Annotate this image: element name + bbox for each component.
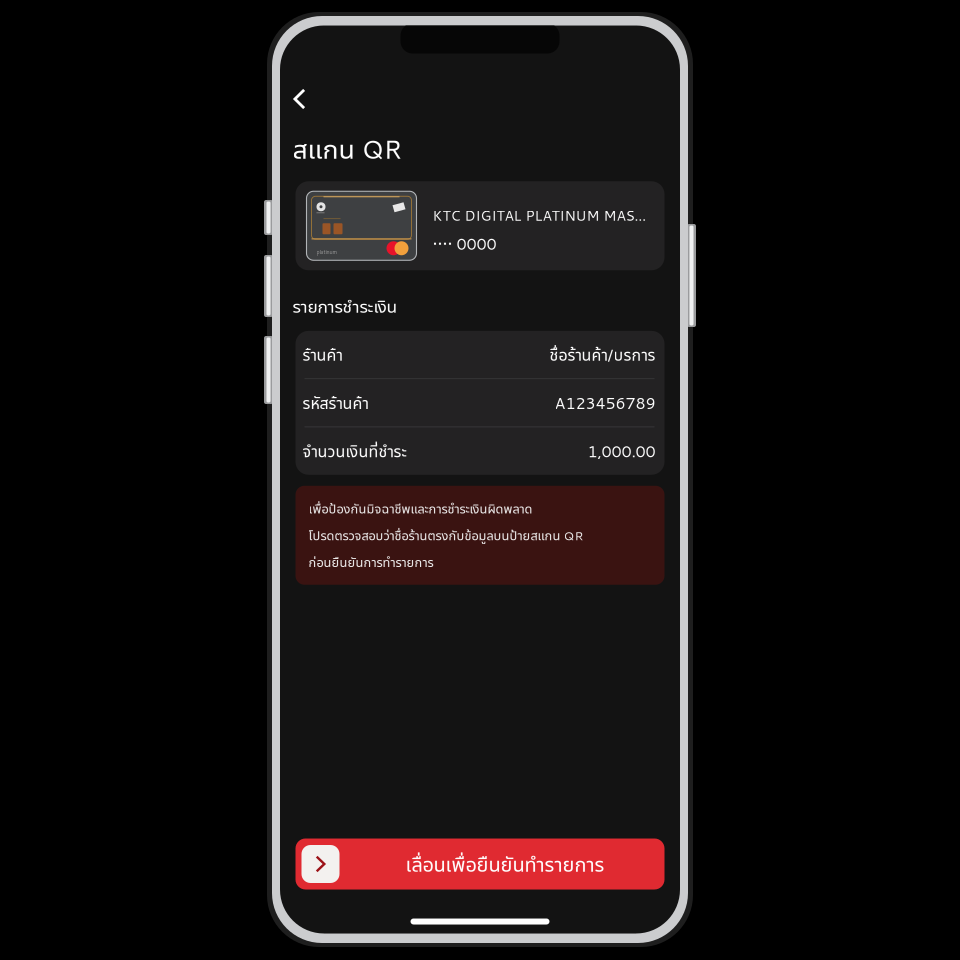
button[interactable]: platinum <box>295 181 664 270</box>
staticText: 1,000.00 <box>587 440 655 462</box>
staticText: เพื่อป้องกันมิจฉาชีพและการชำระเงินผิดพลา… <box>308 500 532 517</box>
staticText: KTC DIGITAL PLATINUM MAS… <box>432 205 646 225</box>
staticText: •••• 0000 <box>432 232 496 255</box>
staticText: จำนวนเงินที่ชำระ <box>302 440 406 462</box>
staticText: platinum <box>316 248 337 256</box>
button[interactable]: เลื่อนเพื่อยืนยันทำรายการ <box>295 838 664 889</box>
staticText: โปรดตรวจสอบว่าชื่อร้านตรงกับข้อมูลบนป้าย… <box>308 526 583 544</box>
staticText: ชื่อร้านค้า/บริการ <box>549 343 655 366</box>
staticText: ร้านค้า <box>302 344 342 365</box>
staticText: รหัสร้านค้า <box>302 392 368 414</box>
staticText: เลื่อนเพื่อยืนยันทำรายการ <box>405 850 604 878</box>
staticText: รายการชำระเงิน <box>292 294 397 318</box>
staticText: สแกน QR <box>292 129 402 167</box>
staticText: ก่อนยืนยันการทำรายการ <box>308 553 433 571</box>
staticText: A123456789 <box>554 391 655 414</box>
button[interactable]: Back <box>280 82 329 115</box>
